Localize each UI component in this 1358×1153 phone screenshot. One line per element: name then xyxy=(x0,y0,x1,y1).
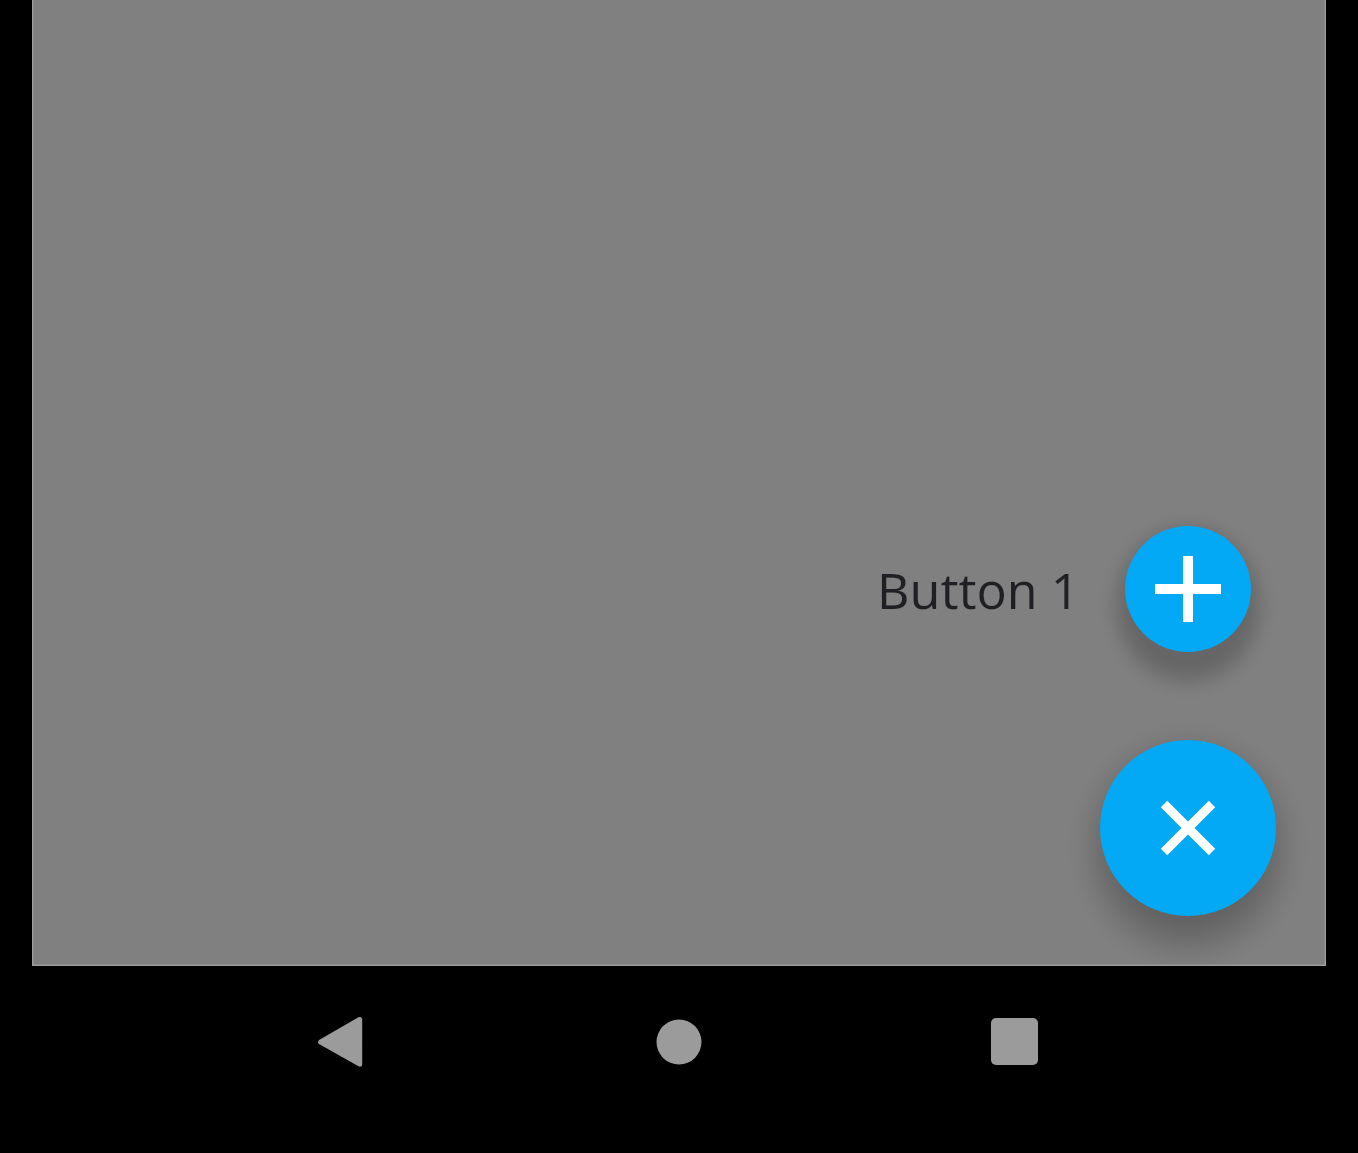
button[interactable]: Back xyxy=(300,995,380,1075)
button[interactable]: Add xyxy=(1125,526,1251,652)
button[interactable]: Recent apps xyxy=(974,1002,1054,1082)
button[interactable]: Close menu xyxy=(1100,740,1276,916)
button[interactable]: Home xyxy=(639,1002,719,1082)
button[interactable]: Button 1 xyxy=(877,556,1080,624)
button[interactable] xyxy=(32,0,1326,966)
